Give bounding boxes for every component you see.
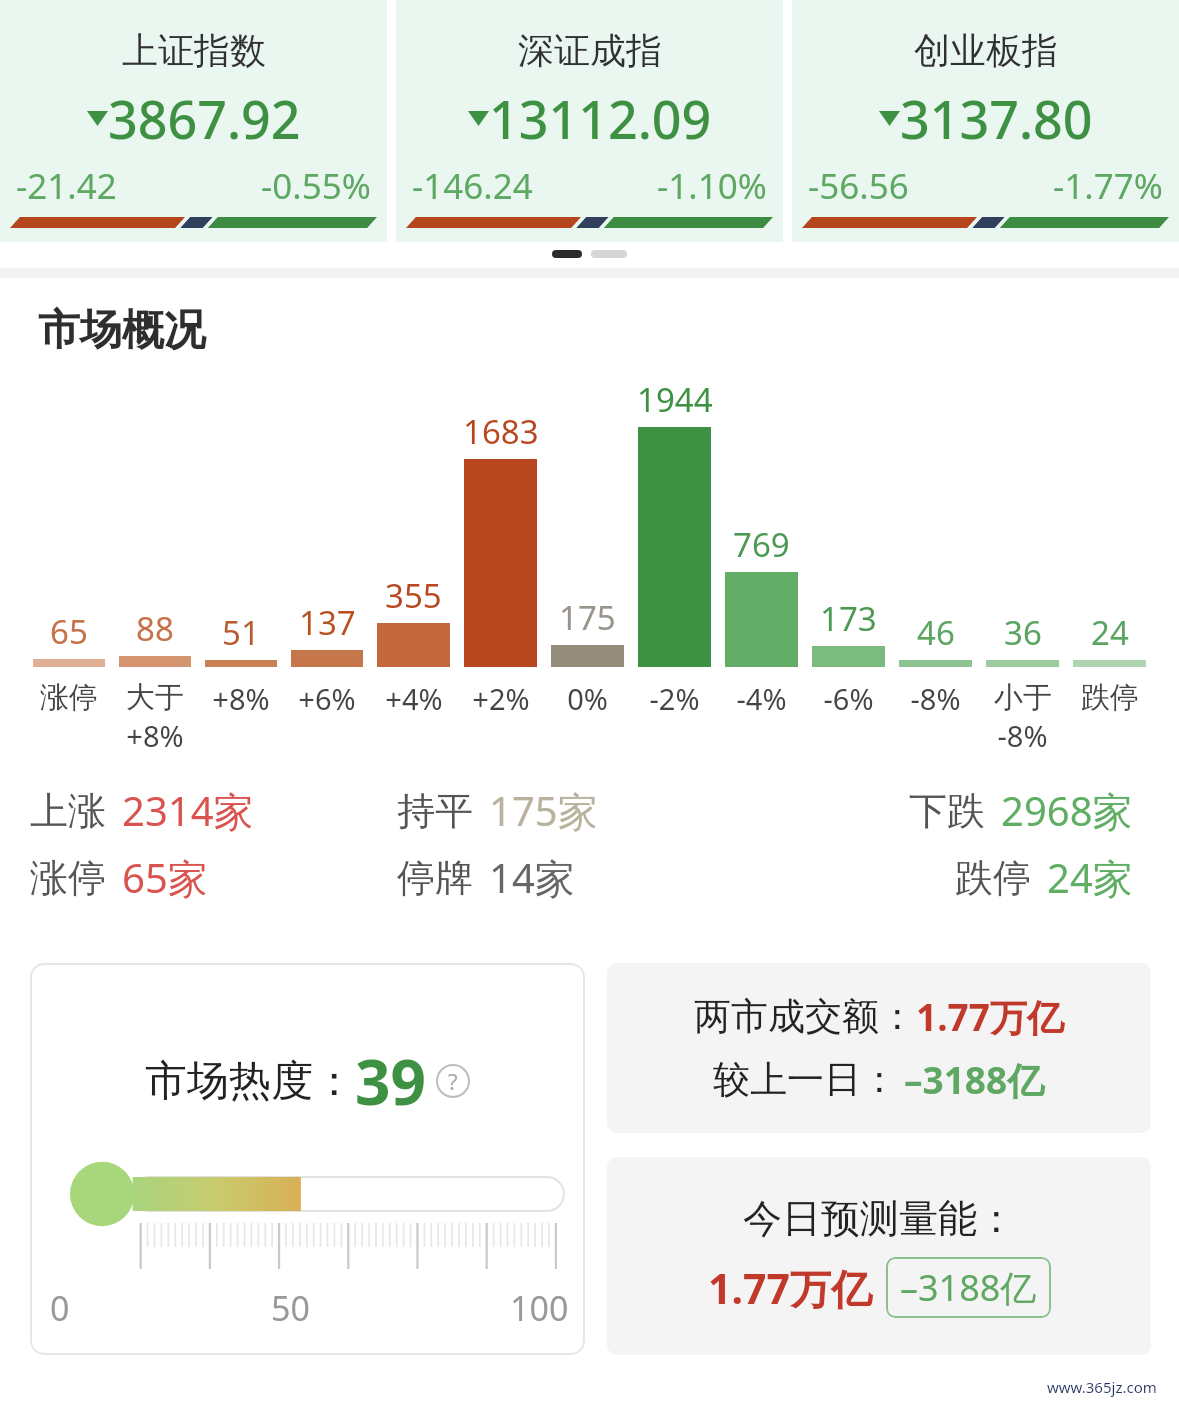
staticText: 创业板指 [914,28,1058,73]
button[interactable]: 1683 [457,409,544,667]
staticText: 13112.09 [489,83,712,154]
staticText: 涨停 [30,854,106,902]
staticText: -1.77% [1053,162,1163,210]
staticText: 100 [510,1285,569,1331]
button[interactable]: 1944 [631,377,718,667]
staticText: 1.77万亿 [708,1260,872,1316]
button[interactable]: 今日预测量能： [607,1157,1151,1355]
staticText: 3867.92 [108,83,301,154]
button[interactable]: 市场热度： [30,963,585,1355]
staticText: 跌停 [1081,679,1139,716]
staticText: 涨停 [40,679,98,716]
staticText: 51 [222,610,260,655]
staticText: 大于 [126,679,184,716]
staticText: 769 [733,522,790,567]
button[interactable]: 769 [718,522,805,667]
staticText: 持平 [397,787,473,835]
staticText: 深证成指 [518,28,662,73]
staticText: 上涨 [30,787,106,835]
button[interactable]: 上证指数 [0,0,387,242]
staticText: 2314家 [122,783,254,838]
staticText: 跌停 [955,854,1031,902]
staticText: -1.10% [657,162,767,210]
button[interactable]: 36 [979,610,1066,667]
staticText: -8% [997,716,1048,755]
staticText: 2968家 [1001,783,1133,838]
staticText: 175 [559,595,616,640]
staticText: 1683 [463,409,539,454]
button[interactable]: 65 [26,609,112,667]
staticText: -0.55% [261,162,371,210]
staticText: 88 [136,606,174,651]
staticText: 市场热度： [145,1055,355,1108]
staticText: -4% [736,679,787,718]
staticText: -6% [823,679,874,718]
button[interactable]: 88 [112,606,198,667]
staticText: -2% [649,679,700,718]
staticText: 0 [50,1285,70,1331]
staticText: 市场概况 [38,304,206,357]
staticText: +8% [126,716,184,755]
staticText: 两市成交额： [694,993,916,1040]
button[interactable]: 355 [370,573,457,667]
staticText: 36 [1004,610,1042,655]
button[interactable]: 两市成交额： [607,963,1151,1133]
staticText: 14家 [489,850,575,905]
staticText: 65家 [122,850,208,905]
staticText: 下跌 [909,787,985,835]
staticText: 今日预测量能： [743,1194,1016,1243]
button[interactable]: 137 [284,600,370,667]
staticText: 137 [299,600,356,645]
staticText: 46 [917,610,955,655]
staticText: 小于 [994,679,1052,716]
button[interactable]: 深证成指 [396,0,783,242]
staticText: 3137.80 [900,83,1093,154]
button[interactable]: 173 [805,596,892,667]
staticText: 停牌 [397,854,473,902]
staticText: +2% [472,679,530,718]
staticText: 24家 [1047,850,1133,905]
staticText: –3188亿 [904,1054,1045,1105]
staticText: 24 [1091,610,1129,655]
button[interactable] [591,250,627,258]
staticText: +4% [385,679,443,718]
staticText: 上证指数 [122,28,266,73]
staticText: +6% [298,679,356,718]
button[interactable]: 帮助 [436,1064,470,1098]
button[interactable]: 46 [892,610,979,667]
button[interactable] [552,250,582,258]
staticText: 355 [385,573,442,618]
staticText: -21.42 [16,162,117,210]
button[interactable]: 创业板指 [792,0,1179,242]
button[interactable]: 24 [1066,610,1153,667]
staticText: 39 [355,1039,426,1123]
staticText: +8% [212,679,270,718]
staticText: www.365jz.com [1047,1377,1157,1397]
staticText: 50 [271,1285,310,1331]
staticText: 0% [567,679,608,718]
staticText: 173 [820,596,877,641]
staticText: 较上一日： [713,1056,898,1103]
staticText: -8% [910,679,961,718]
staticText: ? [448,1066,458,1096]
button[interactable]: 175 [544,595,631,667]
staticText: -146.24 [412,162,533,210]
staticText: 1944 [637,377,713,422]
staticText: 65 [50,609,88,654]
staticText: 175家 [489,783,598,838]
staticText: –3188亿 [900,1263,1037,1312]
staticText: -56.56 [808,162,909,210]
staticText: 1.77万亿 [916,991,1064,1042]
button[interactable]: 51 [198,610,284,667]
